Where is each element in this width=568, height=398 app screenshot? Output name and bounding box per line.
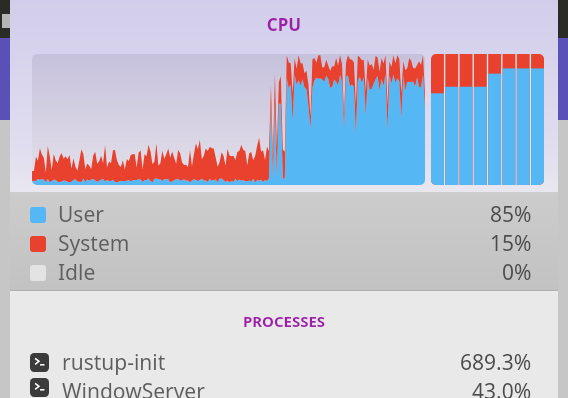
button[interactable]: User [10, 200, 558, 229]
staticText: rustup-init [62, 348, 166, 377]
staticText: 43.0% [472, 377, 532, 398]
staticText: 0% [502, 258, 532, 287]
staticText: User [58, 200, 104, 229]
staticText: CPU [10, 13, 558, 36]
button[interactable]: Idle [10, 258, 558, 287]
button[interactable]: Per-core CPU usage [431, 54, 544, 185]
staticText: System [58, 229, 130, 258]
staticText: WindowServer [62, 377, 205, 398]
button[interactable]: rustup-init [10, 348, 558, 377]
staticText: 15% [490, 229, 532, 258]
button[interactable]: WindowServer [10, 377, 558, 398]
staticText: PROCESSES [10, 311, 558, 331]
staticText: Idle [58, 258, 96, 287]
button[interactable]: CPU usage history graph [32, 54, 425, 185]
button[interactable]: System [10, 229, 558, 258]
staticText: 85% [490, 200, 532, 229]
staticText: 689.3% [460, 348, 532, 377]
